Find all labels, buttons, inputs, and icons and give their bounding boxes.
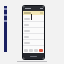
button[interactable] [23, 11, 44, 15]
button[interactable]: Navigation rail [4, 6, 7, 52]
button[interactable] [23, 28, 44, 33]
button[interactable]: Action 2 [34, 49, 38, 52]
button[interactable] [23, 16, 44, 21]
button[interactable] [23, 34, 44, 39]
button[interactable]: Action 1 [29, 49, 33, 52]
button[interactable]: Primary action [39, 49, 43, 52]
button[interactable] [23, 22, 44, 27]
button[interactable] [23, 40, 44, 45]
button[interactable]: Action 0 [24, 49, 28, 52]
